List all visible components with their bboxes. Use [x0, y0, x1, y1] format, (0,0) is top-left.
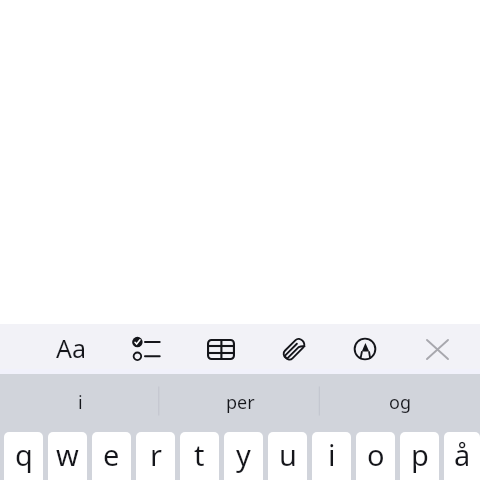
button[interactable]: Close keyboard	[408, 324, 466, 374]
button[interactable]: i	[0, 374, 160, 432]
staticText: i	[78, 390, 83, 415]
staticText: e	[103, 435, 120, 474]
button[interactable]: Attach file	[265, 324, 323, 374]
staticText: p	[411, 435, 429, 474]
staticText: per	[226, 390, 255, 415]
button[interactable]: å	[444, 432, 480, 480]
button[interactable]: Markup	[336, 324, 394, 374]
staticText: u	[279, 435, 297, 474]
staticText: t	[194, 435, 205, 474]
button[interactable]: Checklist	[117, 324, 175, 374]
staticText: q	[15, 435, 33, 474]
button[interactable]: Aa	[42, 324, 100, 374]
button[interactable]: per	[160, 374, 320, 432]
button[interactable]: q	[4, 432, 43, 480]
button[interactable]: Table	[192, 324, 250, 374]
staticText: i	[328, 435, 336, 474]
staticText: o	[367, 435, 385, 474]
staticText: w	[56, 435, 79, 474]
staticText: r	[150, 435, 162, 474]
staticText: y	[236, 435, 251, 474]
button[interactable]: e	[92, 432, 131, 480]
button[interactable]: r	[136, 432, 175, 480]
button[interactable]: w	[48, 432, 87, 480]
staticText: og	[389, 390, 411, 415]
button[interactable]: t	[180, 432, 219, 480]
staticText: Aa	[56, 331, 87, 365]
button[interactable]: u	[268, 432, 307, 480]
button[interactable]: y	[224, 432, 263, 480]
button[interactable]: o	[356, 432, 395, 480]
button[interactable]: og	[320, 374, 480, 432]
button[interactable]: p	[400, 432, 439, 480]
staticText: å	[454, 435, 471, 474]
button[interactable]: i	[312, 432, 351, 480]
